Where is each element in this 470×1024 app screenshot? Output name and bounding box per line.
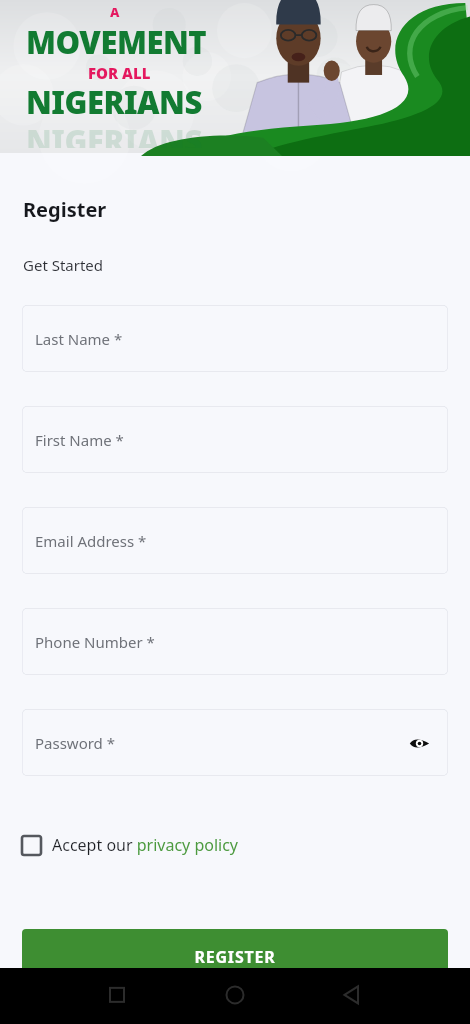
- staticText: FOR ALL: [88, 63, 151, 83]
- staticText: A: [110, 3, 120, 21]
- button[interactable]: Accept our privacy policy: [22, 834, 239, 856]
- staticText: Password *: [35, 733, 116, 753]
- button[interactable]: Last Name *: [22, 305, 448, 372]
- staticText: NIGERIANS: [26, 120, 202, 148]
- staticText: Accept our privacy policy: [52, 834, 239, 856]
- button[interactable]: Back: [324, 968, 380, 1024]
- button[interactable]: Phone Number *: [22, 608, 448, 675]
- staticText: NIGERIANS: [26, 81, 202, 123]
- button[interactable]: Email Address *: [22, 507, 448, 574]
- button[interactable]: Show password: [404, 728, 434, 758]
- button[interactable]: First Name *: [22, 406, 448, 473]
- staticText: REGISTER: [194, 946, 276, 968]
- button[interactable]: Password *: [22, 709, 448, 776]
- button[interactable]: Home: [207, 968, 263, 1024]
- staticText: Get Started: [23, 255, 104, 275]
- staticText: Register: [23, 196, 107, 223]
- staticText: First Name *: [35, 430, 124, 450]
- button[interactable]: Recents: [89, 968, 145, 1024]
- staticText: Phone Number *: [35, 632, 155, 652]
- button[interactable]: REGISTER: [22, 929, 448, 985]
- staticText: Email Address *: [35, 531, 147, 551]
- staticText: MOVEMENT: [26, 21, 207, 63]
- staticText: Last Name *: [35, 329, 123, 349]
